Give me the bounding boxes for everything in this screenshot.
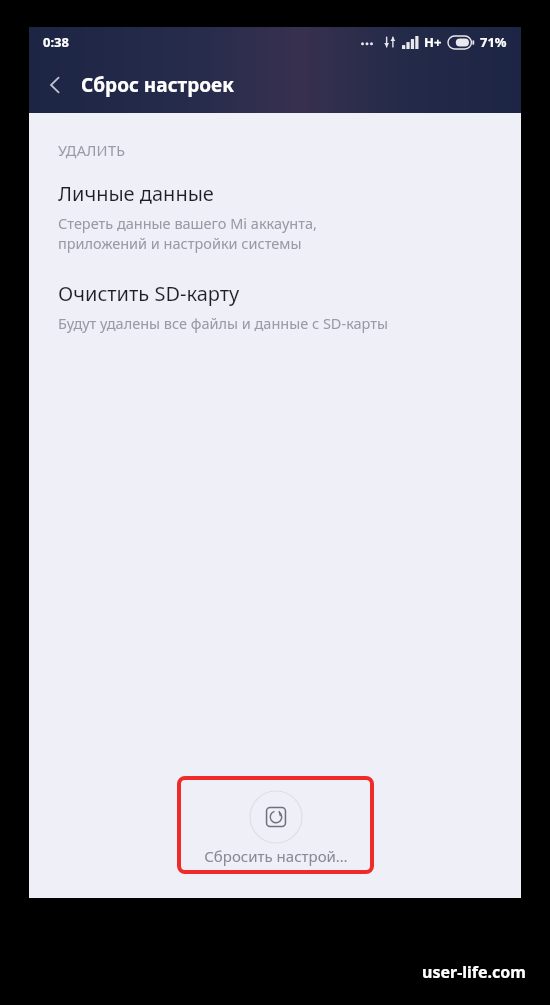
button[interactable]: Личные данные	[29, 180, 521, 254]
staticText: 71%	[480, 33, 507, 51]
staticText: user-life.com	[422, 961, 526, 983]
button[interactable]: Back	[29, 59, 81, 111]
button[interactable]: Сбросить настройки	[177, 776, 374, 874]
staticText: Сбросить настрой…	[204, 846, 348, 866]
button[interactable]: Очистить SD-карту	[29, 280, 521, 333]
staticText: УДАЛИТЬ	[58, 140, 126, 160]
staticText: H+	[424, 33, 442, 51]
staticText: Сброс настроек	[81, 72, 234, 98]
staticText: 0:38	[43, 33, 69, 51]
staticText: Стереть данные вашего Mi аккаунта, прило…	[58, 213, 317, 254]
staticText: Очистить SD-карту	[58, 280, 240, 307]
staticText: Будут удалены все файлы и данные с SD-ка…	[58, 313, 389, 333]
staticText: Личные данные	[58, 180, 214, 207]
